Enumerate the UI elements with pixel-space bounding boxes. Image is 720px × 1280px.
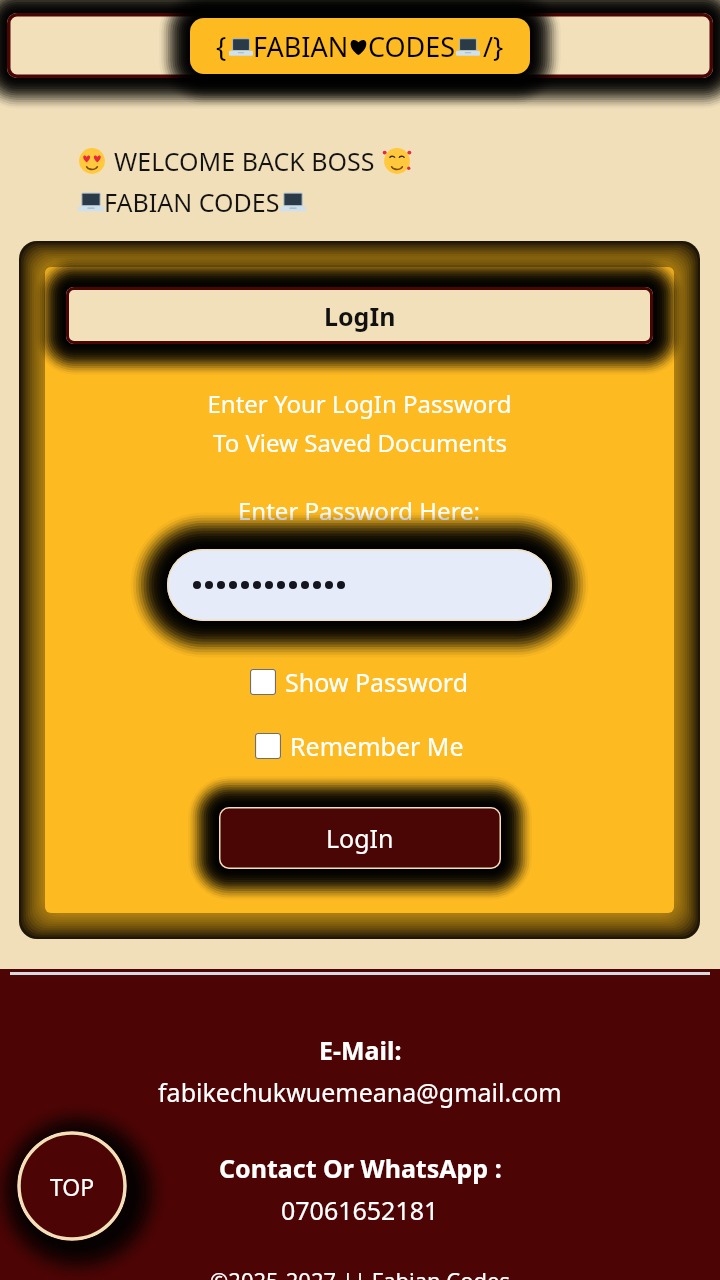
staticText: WELCOME BACK BOSS xyxy=(114,144,375,178)
staticText: /} xyxy=(483,28,504,65)
button[interactable]: { xyxy=(190,18,530,74)
staticText: Show Password xyxy=(285,665,469,699)
staticText: To View Saved Documents xyxy=(213,426,507,459)
staticText: LogIn xyxy=(324,299,396,333)
staticText: E-Mail: xyxy=(319,1033,402,1067)
button[interactable]: Scroll to top xyxy=(17,1131,127,1241)
button[interactable]: LogIn xyxy=(219,807,501,869)
button[interactable]: Show Password xyxy=(246,661,473,703)
staticText: CODES xyxy=(368,28,456,65)
staticText: Contact Or WhatsApp : xyxy=(219,1151,502,1185)
staticText: FABIAN CODES xyxy=(104,185,280,219)
staticText: { xyxy=(216,28,227,65)
staticText: fabikechukwuemeana@gmail.com xyxy=(158,1075,562,1109)
button[interactable]: LogIn xyxy=(66,287,653,344)
button[interactable] xyxy=(167,549,552,621)
staticText: 07061652181 xyxy=(281,1193,439,1227)
staticText: TOP xyxy=(50,1171,95,1202)
staticText: Enter Password Here: xyxy=(238,494,481,527)
staticText: LogIn xyxy=(326,821,394,855)
staticText: Remember Me xyxy=(290,729,464,763)
button[interactable] xyxy=(7,13,713,78)
staticText: ©2025-2027 || Fabian Codes xyxy=(210,1265,511,1280)
staticText: Enter Your LogIn Password xyxy=(207,387,512,420)
button[interactable]: Remember Me xyxy=(251,725,468,767)
staticText: FABIAN xyxy=(253,28,349,65)
